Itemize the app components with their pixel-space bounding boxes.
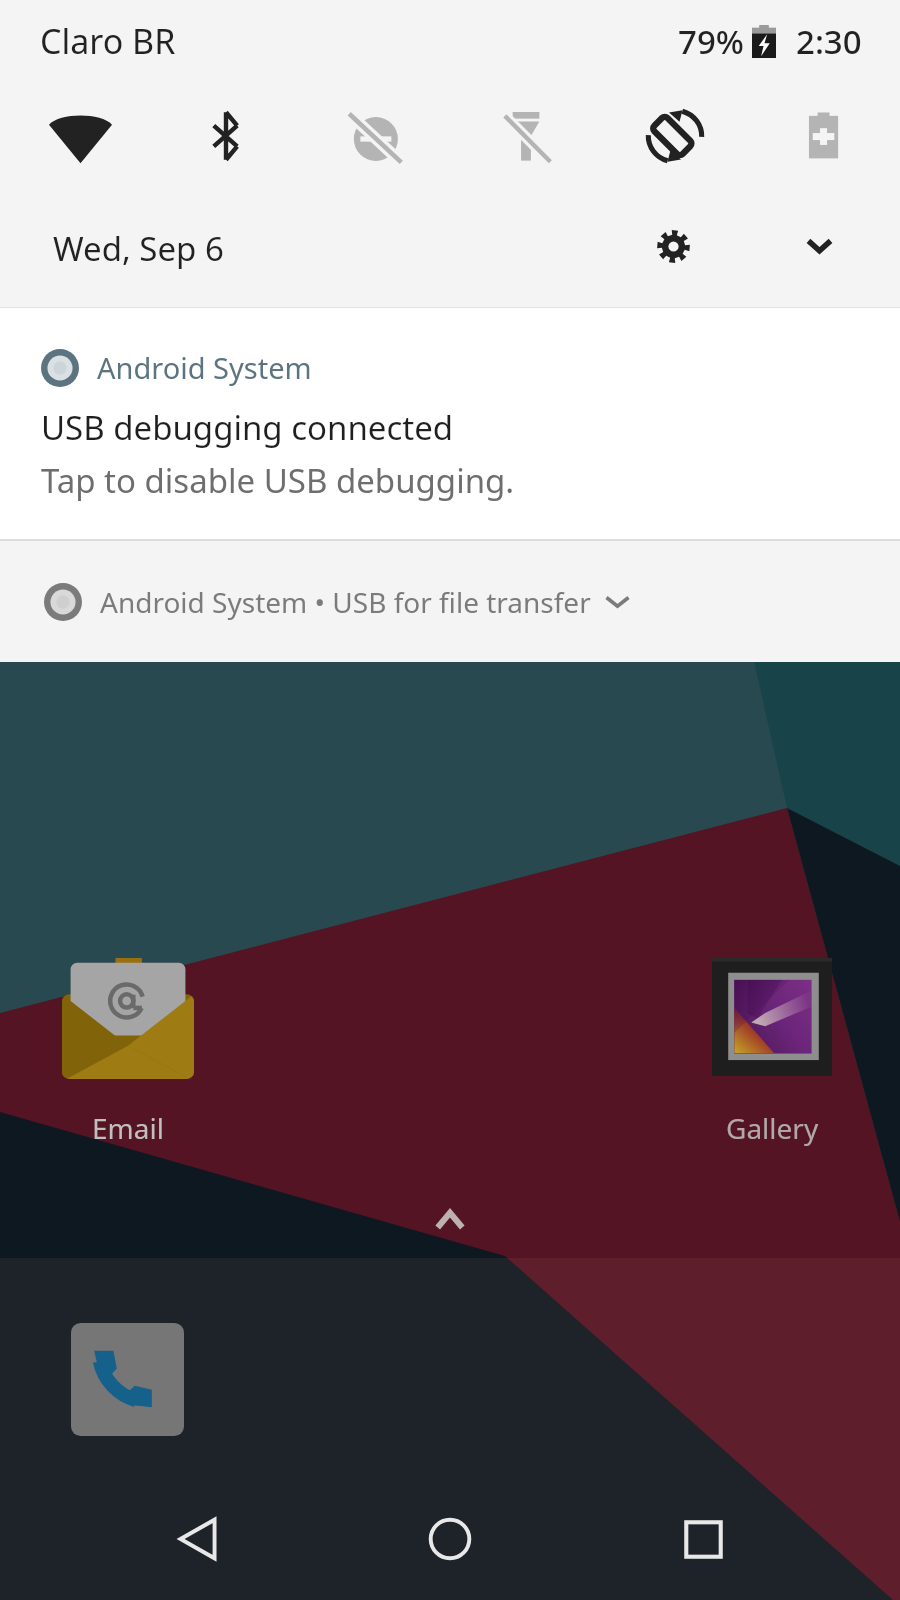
staticText: 79% (678, 19, 744, 64)
button[interactable]: Flashlight (450, 88, 600, 184)
button[interactable]: Back (143, 1484, 253, 1594)
button[interactable]: Phone (71, 1323, 184, 1436)
staticText: Claro BR (40, 18, 176, 64)
button[interactable]: Expand (787, 214, 851, 278)
button[interactable]: Gallery (692, 958, 852, 1147)
staticText: Wed, Sep 6 (53, 226, 224, 271)
button[interactable]: Battery saver (750, 88, 900, 184)
button[interactable]: All apps (412, 1195, 488, 1243)
button[interactable]: Android System (0, 308, 900, 539)
button[interactable]: Bluetooth (150, 88, 300, 184)
staticText: Android System (97, 348, 312, 387)
button[interactable]: Settings (641, 214, 705, 278)
staticText: Email (92, 1109, 164, 1147)
staticText: 2:30 (796, 19, 862, 64)
staticText: Android System • USB for file transfer (100, 583, 591, 621)
staticText: Gallery (726, 1109, 819, 1147)
button[interactable]: Recents (648, 1484, 758, 1594)
button[interactable]: Android System • USB for file transfer (0, 541, 900, 662)
button[interactable]: Home (395, 1484, 505, 1594)
button[interactable]: Wi-Fi (0, 88, 150, 184)
staticText: USB debugging connected (41, 405, 454, 450)
button[interactable]: Email (48, 958, 208, 1147)
staticText: Tap to disable USB debugging. (41, 458, 515, 503)
button[interactable]: Auto rotate (600, 88, 750, 184)
button[interactable]: Do not disturb (300, 88, 450, 184)
